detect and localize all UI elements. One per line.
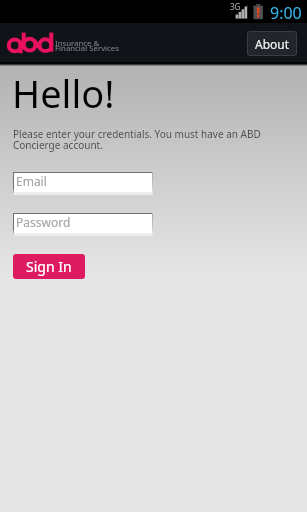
staticText: 3G [230, 1, 241, 12]
staticText: About [255, 36, 290, 52]
staticText: Hello! [12, 67, 115, 119]
staticText: Password [16, 214, 71, 230]
button[interactable]: Password [13, 213, 153, 236]
button[interactable]: Sign In [13, 254, 85, 279]
button[interactable]: About [247, 31, 297, 56]
staticText: Email [16, 173, 47, 189]
staticText: 9:00 [270, 2, 302, 24]
staticText: Financial Services [55, 43, 119, 54]
button[interactable]: Email [13, 172, 153, 195]
staticText: Sign In [26, 257, 72, 276]
staticText: Please enter your credentials. You must … [13, 127, 267, 152]
staticText: Insurance & [55, 38, 100, 49]
